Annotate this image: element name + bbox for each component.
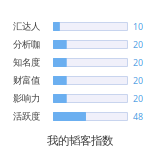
staticText: 汇达人 — [13, 21, 40, 32]
staticText: 20 — [133, 74, 143, 86]
staticText: 财富值 — [13, 75, 40, 86]
staticText: 20 — [133, 56, 143, 68]
button[interactable]: 影响力 — [13, 89, 160, 107]
button[interactable]: 汇达人 — [13, 17, 160, 35]
staticText: 48 — [133, 110, 143, 122]
staticText: 我的韬客指数 — [47, 133, 113, 148]
staticText: 活跃度 — [13, 111, 40, 122]
button[interactable]: 财富值 — [13, 71, 160, 89]
staticText: 20 — [133, 92, 143, 104]
staticText: 10 — [133, 20, 143, 32]
staticText: 影响力 — [13, 93, 40, 104]
staticText: 知名度 — [13, 57, 40, 68]
button[interactable]: 知名度 — [13, 53, 160, 71]
button[interactable]: 活跃度 — [13, 107, 160, 125]
button[interactable]: 分析咖 — [13, 35, 160, 53]
staticText: 分析咖 — [13, 39, 40, 50]
staticText: 20 — [133, 38, 143, 50]
